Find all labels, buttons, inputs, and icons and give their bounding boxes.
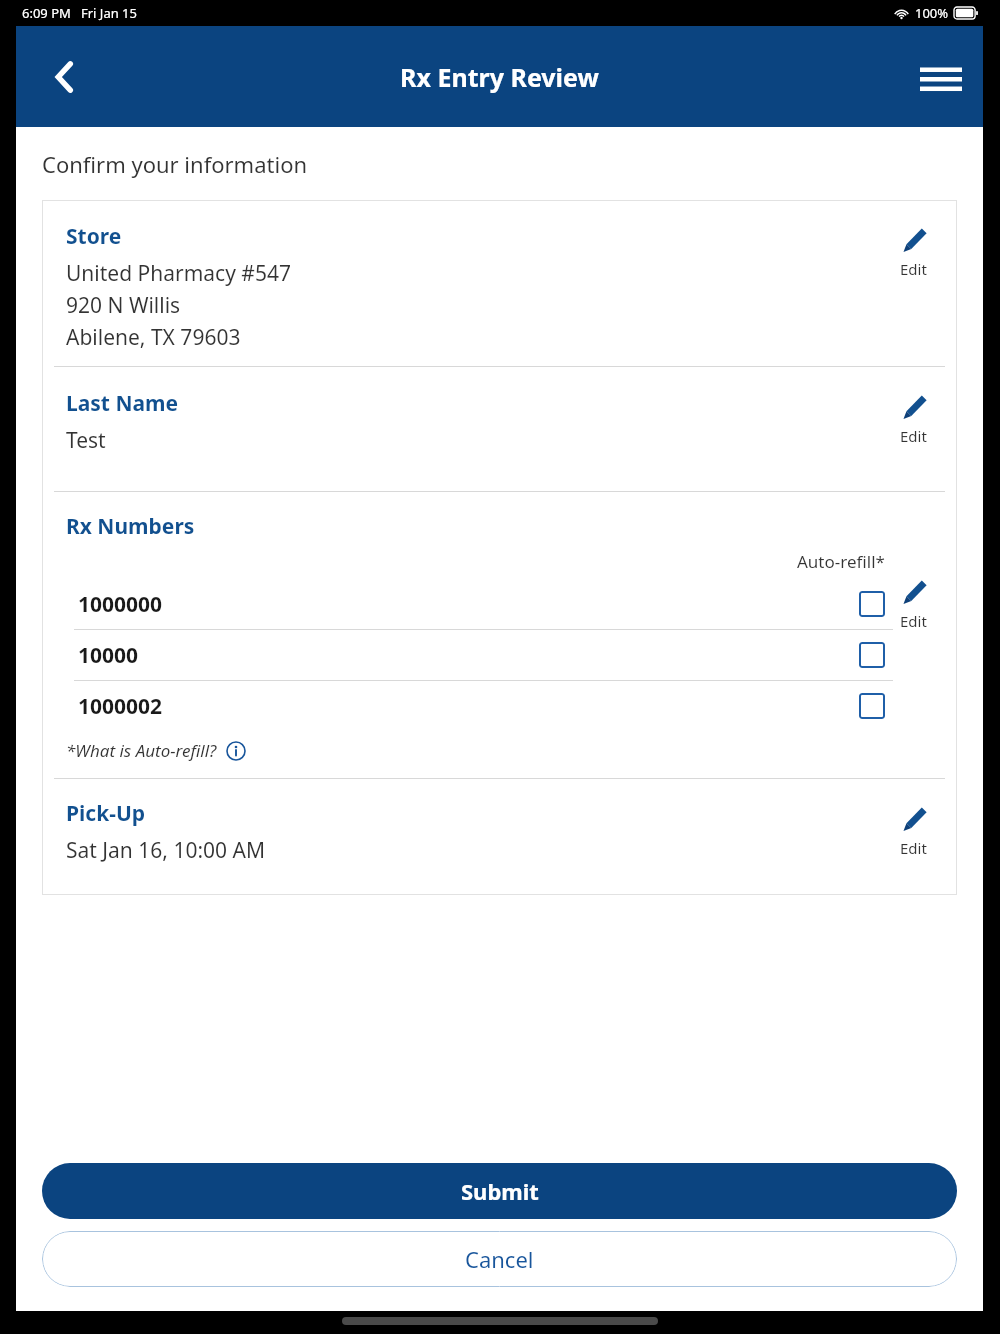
staticText: Confirm your information — [42, 149, 308, 179]
button[interactable]: 1000002 — [66, 681, 893, 731]
staticText: Rx Entry Review — [400, 60, 599, 94]
staticText: Edit — [900, 611, 927, 631]
staticText: Pick-Up — [66, 799, 146, 828]
button[interactable]: Submit — [42, 1163, 957, 1219]
staticText: Abilene, TX 79603 — [66, 323, 241, 352]
button[interactable]: Edit — [893, 578, 933, 633]
staticText: 6:09 PM — [22, 4, 71, 22]
staticText: Rx Numbers — [66, 512, 195, 541]
staticText: Store — [66, 222, 122, 251]
staticText: Cancel — [465, 1244, 534, 1274]
staticText: United Pharmacy #547 — [66, 259, 291, 288]
button[interactable]: Cancel — [42, 1231, 957, 1287]
button[interactable]: Back — [36, 49, 92, 105]
button[interactable]: 1000000 — [66, 579, 893, 629]
button[interactable]: Edit — [893, 805, 933, 860]
staticText: 920 N Willis — [66, 291, 181, 320]
button[interactable]: Auto-refill — [855, 689, 889, 723]
staticText: 10000 — [78, 641, 139, 670]
staticText: *What is Auto-refill? — [66, 739, 217, 762]
staticText: Edit — [900, 259, 927, 279]
button[interactable]: Edit — [893, 393, 933, 448]
staticText: Sat Jan 16, 10:00 AM — [66, 836, 266, 865]
staticText: 1000000 — [78, 590, 163, 619]
button[interactable]: What is Auto-refill info — [226, 741, 246, 761]
staticText: 1000002 — [78, 692, 163, 721]
staticText: Fri Jan 15 — [81, 4, 137, 22]
button[interactable]: Menu — [913, 49, 969, 105]
button[interactable]: Auto-refill — [855, 587, 889, 621]
button[interactable]: Auto-refill — [855, 638, 889, 672]
staticText: 100% — [915, 4, 949, 22]
staticText: Edit — [900, 838, 927, 858]
staticText: Test — [66, 426, 106, 455]
button[interactable]: Edit — [893, 226, 933, 281]
button[interactable]: 10000 — [66, 630, 893, 680]
staticText: Last Name — [66, 389, 179, 418]
staticText: Submit — [461, 1176, 539, 1206]
staticText: Auto-refill* — [797, 550, 885, 573]
staticText: Edit — [900, 426, 927, 446]
